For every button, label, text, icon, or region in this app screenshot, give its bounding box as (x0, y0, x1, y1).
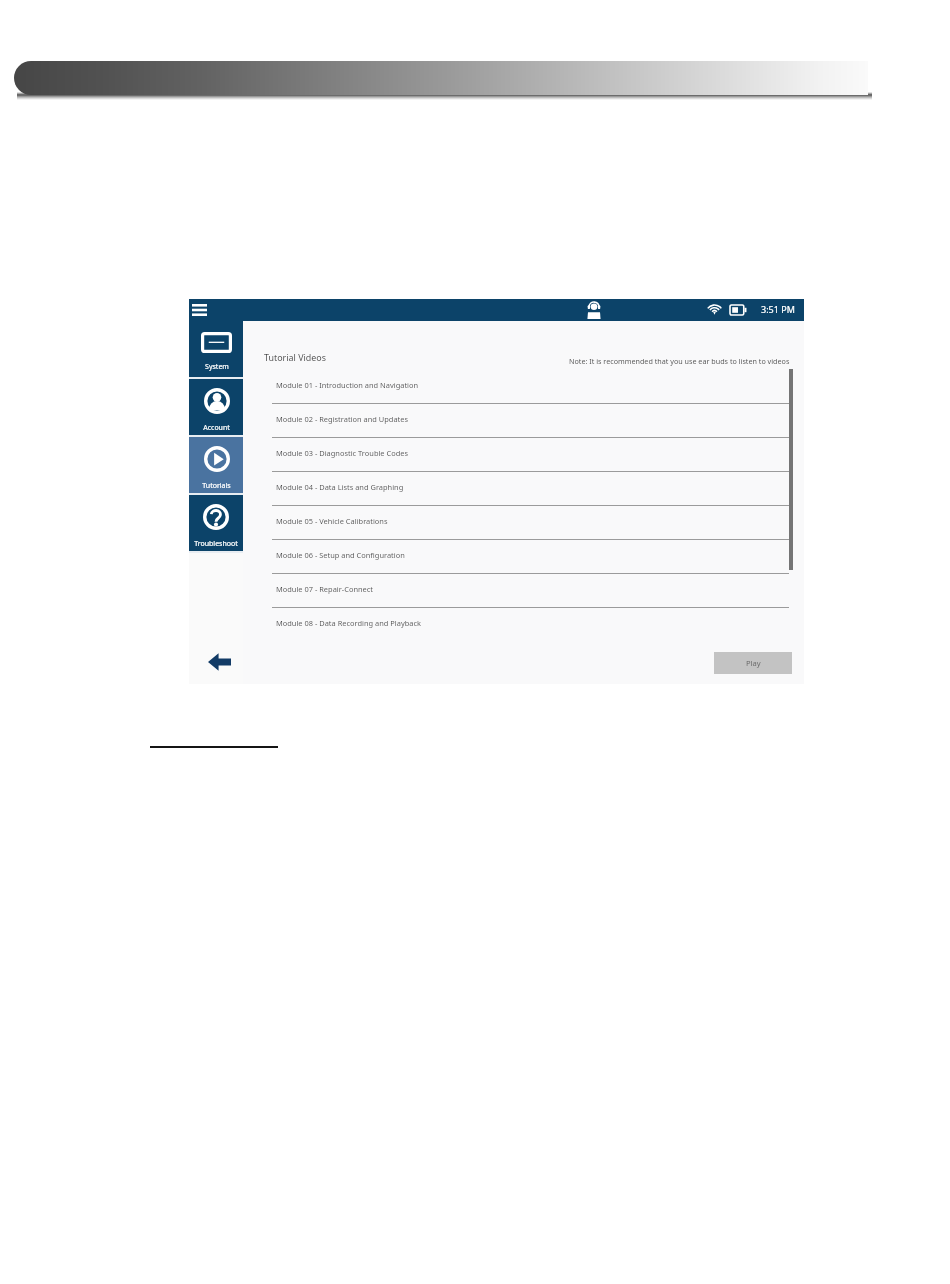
button[interactable]: Module 02 - Registration and Updates (243, 404, 804, 438)
button[interactable]: Module 04 - Data Lists and Graphing (243, 472, 804, 506)
staticText: Module 02 - Registration and Updates (276, 414, 408, 424)
staticText: Tutorial Videos (264, 351, 326, 363)
staticText: 3:51 PM (761, 303, 795, 315)
button[interactable]: System (189, 321, 243, 377)
staticText: Module 07 - Repair-Connect (276, 584, 374, 594)
other: Battery (730, 305, 746, 315)
button[interactable]: Module 06 - Setup and Configuration (243, 540, 804, 574)
button[interactable]: Back (208, 653, 231, 671)
staticText: Account (203, 423, 230, 433)
button[interactable]: Module 08 - Data Recording and Playback (243, 608, 804, 642)
button[interactable]: Tutorials (189, 437, 243, 493)
other: Wi-Fi (705, 304, 724, 315)
button[interactable]: Module 05 - Vehicle Calibrations (243, 506, 804, 540)
button[interactable]: Account (189, 379, 243, 435)
staticText: Note: It is recommended that you use ear… (569, 356, 790, 366)
staticText: Play (746, 658, 761, 668)
button[interactable]: Module 01 - Introduction and Navigation (243, 370, 804, 404)
staticText: Module 06 - Setup and Configuration (276, 550, 405, 560)
button[interactable]: Customer support (587, 301, 601, 319)
staticText: Module 05 - Vehicle Calibrations (276, 516, 388, 526)
staticText: Module 04 - Data Lists and Graphing (276, 482, 404, 492)
staticText: Tutorials (202, 481, 231, 491)
button[interactable]: Module 03 - Diagnostic Trouble Codes (243, 438, 804, 472)
button[interactable]: Play (714, 652, 792, 674)
button[interactable]: Module 07 - Repair-Connect (243, 574, 804, 608)
staticText: Module 01 - Introduction and Navigation (276, 380, 419, 390)
button[interactable]: Troubleshoot (189, 495, 243, 551)
button[interactable]: Menu (189, 299, 211, 321)
staticText: Module 03 - Diagnostic Trouble Codes (276, 448, 409, 458)
staticText: Module 08 - Data Recording and Playback (276, 618, 421, 628)
staticText: System (205, 362, 229, 372)
staticText: Troubleshoot (194, 539, 238, 549)
